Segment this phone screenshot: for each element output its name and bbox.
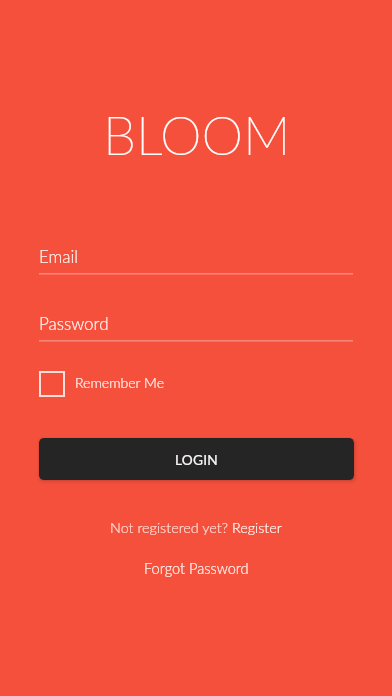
- staticText: Remember Me: [75, 374, 165, 391]
- staticText: Forgot Password: [144, 560, 249, 578]
- button[interactable]: LOGIN: [39, 438, 354, 480]
- button[interactable]: Not registered yet? Register: [110, 519, 282, 536]
- button[interactable]: Password: [39, 313, 109, 333]
- staticText: Email: [39, 246, 79, 266]
- other: Remember Me checkbox: [39, 371, 65, 397]
- staticText: LOGIN: [175, 451, 218, 467]
- button[interactable]: Forgot Password: [144, 560, 249, 578]
- button[interactable]: Remember Me checkbox: [39, 371, 165, 397]
- staticText: Not registered yet? Register: [110, 519, 282, 536]
- staticText: BLOOM: [103, 103, 291, 166]
- button[interactable]: Email: [39, 246, 79, 266]
- staticText: Password: [39, 313, 109, 333]
